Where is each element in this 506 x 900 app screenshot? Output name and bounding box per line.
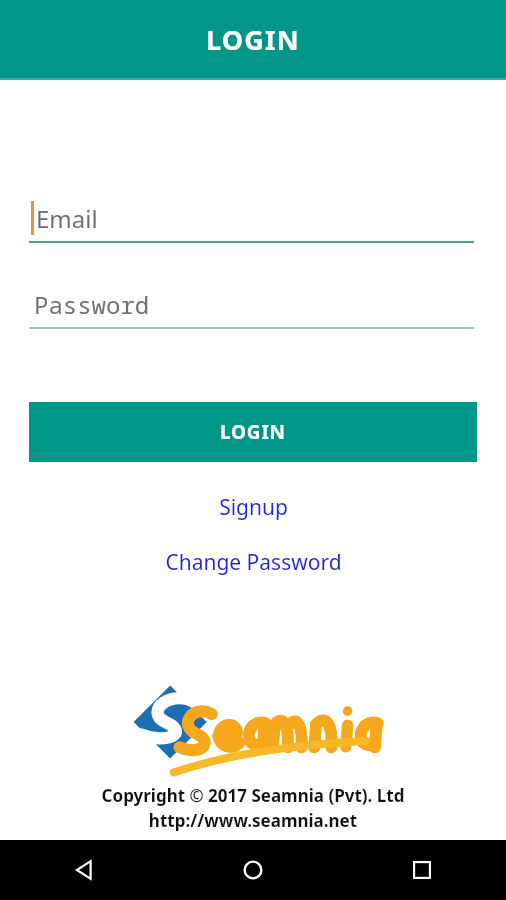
staticText: Copyright © 2017 Seamnia (Pvt). Ltd (0, 784, 506, 807)
button[interactable]: Change Password (0, 542, 506, 582)
staticText: Signup (219, 493, 288, 522)
staticText: http://www.seamnia.net (0, 809, 506, 832)
staticText: Change Password (165, 548, 342, 577)
staticText: LOGIN (220, 419, 286, 445)
button[interactable]: Email (29, 195, 474, 243)
button[interactable]: LOGIN (29, 402, 477, 462)
staticText: Password (34, 288, 150, 321)
button[interactable]: Back (0, 840, 168, 900)
staticText: LOGIN (206, 21, 300, 58)
button[interactable]: Recent apps (337, 840, 506, 900)
button[interactable]: Password (29, 281, 474, 329)
button[interactable]: Home (168, 840, 337, 900)
button[interactable]: Signup (0, 487, 506, 527)
staticText: Email (36, 202, 98, 235)
